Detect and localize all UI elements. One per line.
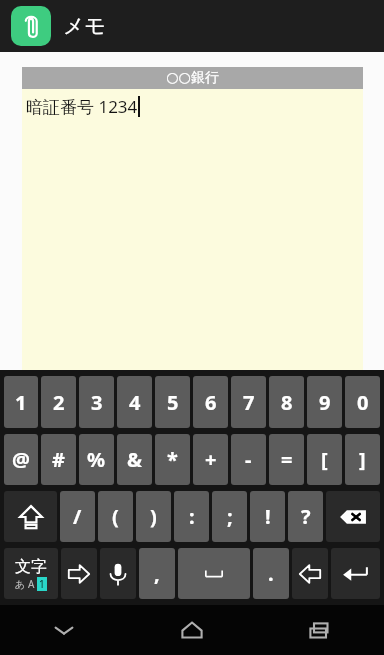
- button[interactable]: ?: [288, 491, 323, 542]
- button[interactable]: *: [155, 434, 190, 485]
- staticText: ]: [359, 446, 366, 473]
- button[interactable]: !: [250, 491, 285, 542]
- button[interactable]: [: [307, 434, 342, 485]
- button[interactable]: =: [269, 434, 304, 485]
- staticText: 1: [39, 577, 45, 591]
- button[interactable]: Enter: [331, 548, 380, 599]
- staticText: 9: [319, 389, 331, 416]
- staticText: あ: [15, 578, 26, 591]
- button[interactable]: 5: [155, 376, 190, 428]
- button[interactable]: @: [4, 434, 38, 485]
- staticText: 暗証番号 1234: [26, 95, 138, 118]
- button[interactable]: /: [60, 491, 95, 542]
- staticText: -: [245, 446, 252, 473]
- staticText: ?: [301, 503, 311, 530]
- staticText: 8: [281, 389, 293, 416]
- button[interactable]: ;: [212, 491, 247, 542]
- button[interactable]: %: [79, 434, 114, 485]
- staticText: メモ: [63, 13, 106, 39]
- button[interactable]: :: [174, 491, 209, 542]
- button[interactable]: &: [117, 434, 152, 485]
- staticText: 0: [357, 389, 369, 416]
- button[interactable]: Backspace: [326, 491, 380, 542]
- button[interactable]: #: [41, 434, 76, 485]
- staticText: (: [112, 503, 119, 530]
- button[interactable]: 1: [4, 376, 38, 428]
- button[interactable]: .: [253, 548, 289, 599]
- button[interactable]: 6: [193, 376, 228, 428]
- button[interactable]: 戻る: [0, 605, 128, 655]
- staticText: ○○銀行: [166, 69, 219, 87]
- staticText: ;: [227, 503, 233, 530]
- staticText: 5: [167, 389, 179, 416]
- button[interactable]: ): [136, 491, 171, 542]
- button[interactable]: 2: [41, 376, 76, 428]
- button[interactable]: スペース: [178, 548, 250, 599]
- staticText: 6: [205, 389, 217, 416]
- button[interactable]: 文字種切替: [4, 548, 58, 599]
- staticText: [: [321, 446, 328, 473]
- button[interactable]: +: [193, 434, 228, 485]
- button[interactable]: ,: [139, 548, 175, 599]
- staticText: 1: [15, 389, 27, 416]
- staticText: !: [265, 503, 271, 530]
- button[interactable]: 右: [292, 548, 328, 599]
- button[interactable]: 9: [307, 376, 342, 428]
- button[interactable]: -: [231, 434, 266, 485]
- button[interactable]: 音声入力: [100, 548, 136, 599]
- staticText: :: [189, 503, 195, 530]
- staticText: /: [73, 503, 82, 530]
- staticText: &: [127, 446, 142, 473]
- button[interactable]: 4: [117, 376, 152, 428]
- staticText: #: [52, 446, 65, 473]
- button[interactable]: 履歴: [256, 605, 384, 655]
- staticText: 7: [243, 389, 255, 416]
- staticText: .: [268, 560, 274, 587]
- button[interactable]: Shift: [4, 491, 57, 542]
- button[interactable]: ]: [345, 434, 380, 485]
- staticText: *: [167, 446, 178, 473]
- button[interactable]: ホーム: [128, 605, 256, 655]
- staticText: 3: [91, 389, 103, 416]
- button[interactable]: 7: [231, 376, 266, 428]
- staticText: @: [12, 446, 30, 473]
- button[interactable]: 0: [345, 376, 380, 428]
- staticText: ): [150, 503, 157, 530]
- button[interactable]: 3: [79, 376, 114, 428]
- staticText: 2: [53, 389, 65, 416]
- button[interactable]: 8: [269, 376, 304, 428]
- staticText: +: [205, 446, 217, 473]
- button[interactable]: 左: [61, 548, 97, 599]
- staticText: 4: [129, 389, 141, 416]
- staticText: ,: [154, 560, 160, 587]
- staticText: %: [87, 446, 106, 473]
- button[interactable]: メモ アプリ: [11, 6, 51, 46]
- staticText: =: [281, 446, 293, 473]
- staticText: A: [28, 577, 35, 591]
- button[interactable]: (: [98, 491, 133, 542]
- staticText: 文字: [15, 557, 47, 577]
